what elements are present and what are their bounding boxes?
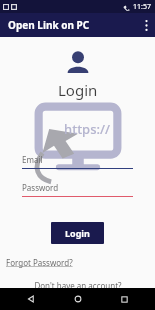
staticText: Forgot Password?	[6, 257, 73, 268]
staticText: 11:57	[133, 2, 151, 12]
button[interactable]: More options	[137, 13, 155, 37]
staticText: https://	[64, 120, 111, 138]
button[interactable]: Login	[51, 222, 104, 244]
staticText: Login	[58, 80, 98, 100]
button[interactable]: Email	[22, 154, 133, 169]
staticText: Don't have an account?	[34, 280, 122, 288]
staticText: Email	[22, 154, 43, 165]
staticText: Password	[22, 182, 59, 193]
staticText: Open Link on PC	[8, 18, 90, 32]
button[interactable]: Recent apps	[109, 288, 139, 310]
button[interactable]: Home	[63, 288, 93, 310]
staticText: Login	[65, 227, 90, 239]
button[interactable]: Password	[22, 182, 133, 197]
button[interactable]: Forgot Password?	[6, 257, 73, 268]
button[interactable]: Back	[16, 288, 46, 310]
button[interactable]: Don't have an account?	[0, 280, 155, 288]
